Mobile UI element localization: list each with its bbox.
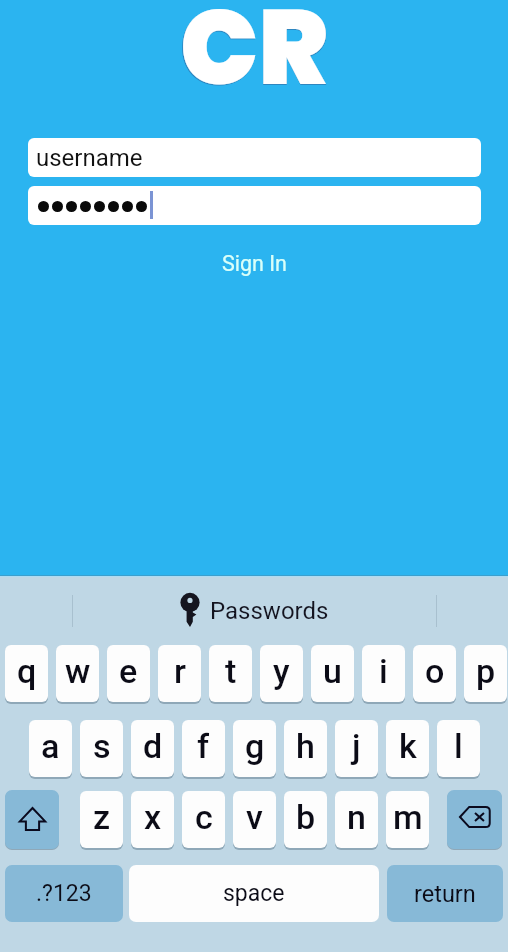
staticText: Passwords <box>210 597 329 625</box>
button[interactable]: g <box>233 720 276 777</box>
staticText: z <box>93 797 111 837</box>
staticText: CR <box>180 0 328 115</box>
staticText: j <box>352 726 361 766</box>
button[interactable]: .?123 <box>5 865 123 922</box>
staticText: x <box>144 797 162 837</box>
button[interactable]: l <box>437 720 480 777</box>
button[interactable]: s <box>80 720 123 777</box>
button[interactable]: n <box>335 791 378 848</box>
button[interactable]: w <box>56 645 99 702</box>
button[interactable]: Sign In <box>216 249 293 278</box>
button[interactable]: Passwords <box>180 594 329 627</box>
button[interactable]: v <box>233 791 276 848</box>
button[interactable]: c <box>182 791 225 848</box>
button[interactable]: u <box>311 645 354 702</box>
button[interactable]: t <box>209 645 252 702</box>
button[interactable]: Shift <box>5 790 59 849</box>
staticText: s <box>93 726 111 766</box>
staticText: w <box>65 651 91 691</box>
staticText: k <box>399 726 417 766</box>
staticText: Sign In <box>222 251 287 276</box>
staticText: l <box>454 726 463 766</box>
staticText: o <box>425 651 445 691</box>
staticText: h <box>296 726 315 766</box>
staticText: space <box>223 880 285 907</box>
staticText: m <box>393 797 423 837</box>
button[interactable]: a <box>29 720 72 777</box>
button[interactable]: r <box>158 645 201 702</box>
button[interactable]: return <box>387 865 503 922</box>
button[interactable]: f <box>182 720 225 777</box>
staticText: p <box>476 651 496 691</box>
button[interactable]: e <box>107 645 150 702</box>
button[interactable]: o <box>413 645 456 702</box>
button[interactable]: j <box>335 720 378 777</box>
button[interactable]: m <box>386 791 429 848</box>
staticText: .?123 <box>36 880 92 907</box>
staticText: n <box>347 797 366 837</box>
staticText: return <box>414 880 476 908</box>
staticText: c <box>195 797 213 837</box>
button[interactable]: username <box>28 138 481 177</box>
staticText: username <box>36 144 143 172</box>
button[interactable]: x <box>131 791 174 848</box>
staticText: v <box>246 797 263 837</box>
staticText: CR <box>179 0 329 115</box>
button[interactable]: space <box>129 865 379 922</box>
button[interactable]: k <box>386 720 429 777</box>
button[interactable] <box>28 186 481 225</box>
staticText: r <box>174 651 186 691</box>
staticText: i <box>379 651 388 691</box>
staticText: y <box>273 651 290 691</box>
button[interactable]: p <box>464 645 507 702</box>
button[interactable]: z <box>80 791 123 848</box>
staticText: t <box>225 651 237 691</box>
button[interactable]: q <box>5 645 48 702</box>
staticText: q <box>17 651 37 691</box>
staticText: a <box>41 726 60 766</box>
button[interactable]: b <box>284 791 327 848</box>
staticText: e <box>119 651 138 691</box>
button[interactable]: y <box>260 645 303 702</box>
button[interactable]: h <box>284 720 327 777</box>
staticText: u <box>323 651 342 691</box>
button[interactable]: i <box>362 645 405 702</box>
staticText: f <box>197 726 210 766</box>
button[interactable]: d <box>131 720 174 777</box>
staticText: g <box>245 726 265 766</box>
button[interactable]: Backspace <box>447 790 502 849</box>
staticText: d <box>143 726 163 766</box>
staticText: b <box>296 797 316 837</box>
